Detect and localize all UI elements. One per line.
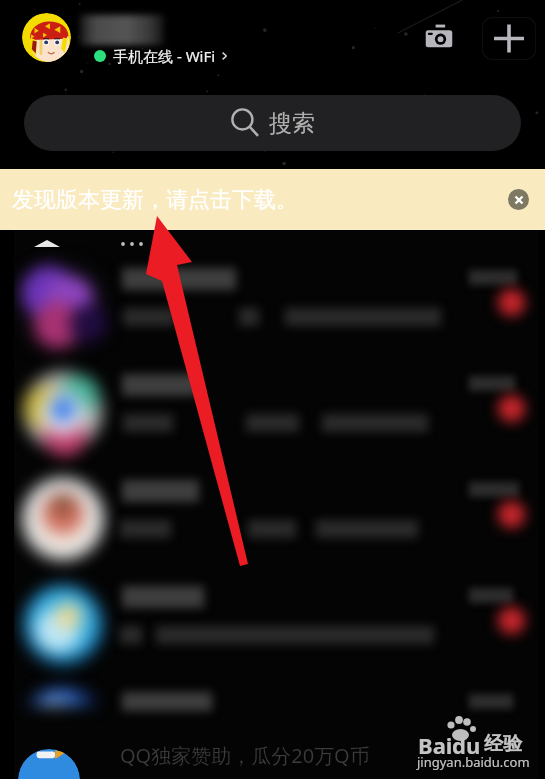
button[interactable] — [14, 464, 539, 570]
button[interactable]: 搜索 — [24, 95, 521, 151]
button[interactable] — [14, 676, 539, 695]
staticText: 经验 — [484, 732, 522, 756]
button[interactable]: Close — [508, 189, 529, 210]
button[interactable]: Camera — [417, 15, 461, 59]
staticText: 手机在线 - WiFi — [113, 46, 216, 66]
button[interactable] — [14, 570, 539, 676]
button[interactable]: 手机在线 - WiFi — [94, 46, 231, 66]
staticText: jingyan.baidu.com — [417, 753, 530, 771]
button[interactable]: 发现版本更新，请点击下载。 — [0, 169, 545, 230]
staticText: QQ独家赞助，瓜分20万Q币 — [120, 742, 370, 769]
button[interactable]: Add — [482, 17, 536, 60]
staticText: 搜索 — [269, 109, 315, 138]
button[interactable]: Profile — [22, 13, 71, 62]
staticText: du — [452, 730, 481, 760]
button[interactable] — [14, 252, 539, 358]
button[interactable] — [14, 358, 539, 464]
staticText: 发现版本更新，请点击下载。 — [12, 186, 298, 214]
button[interactable] — [14, 230, 539, 252]
staticText: Bai — [418, 730, 453, 760]
